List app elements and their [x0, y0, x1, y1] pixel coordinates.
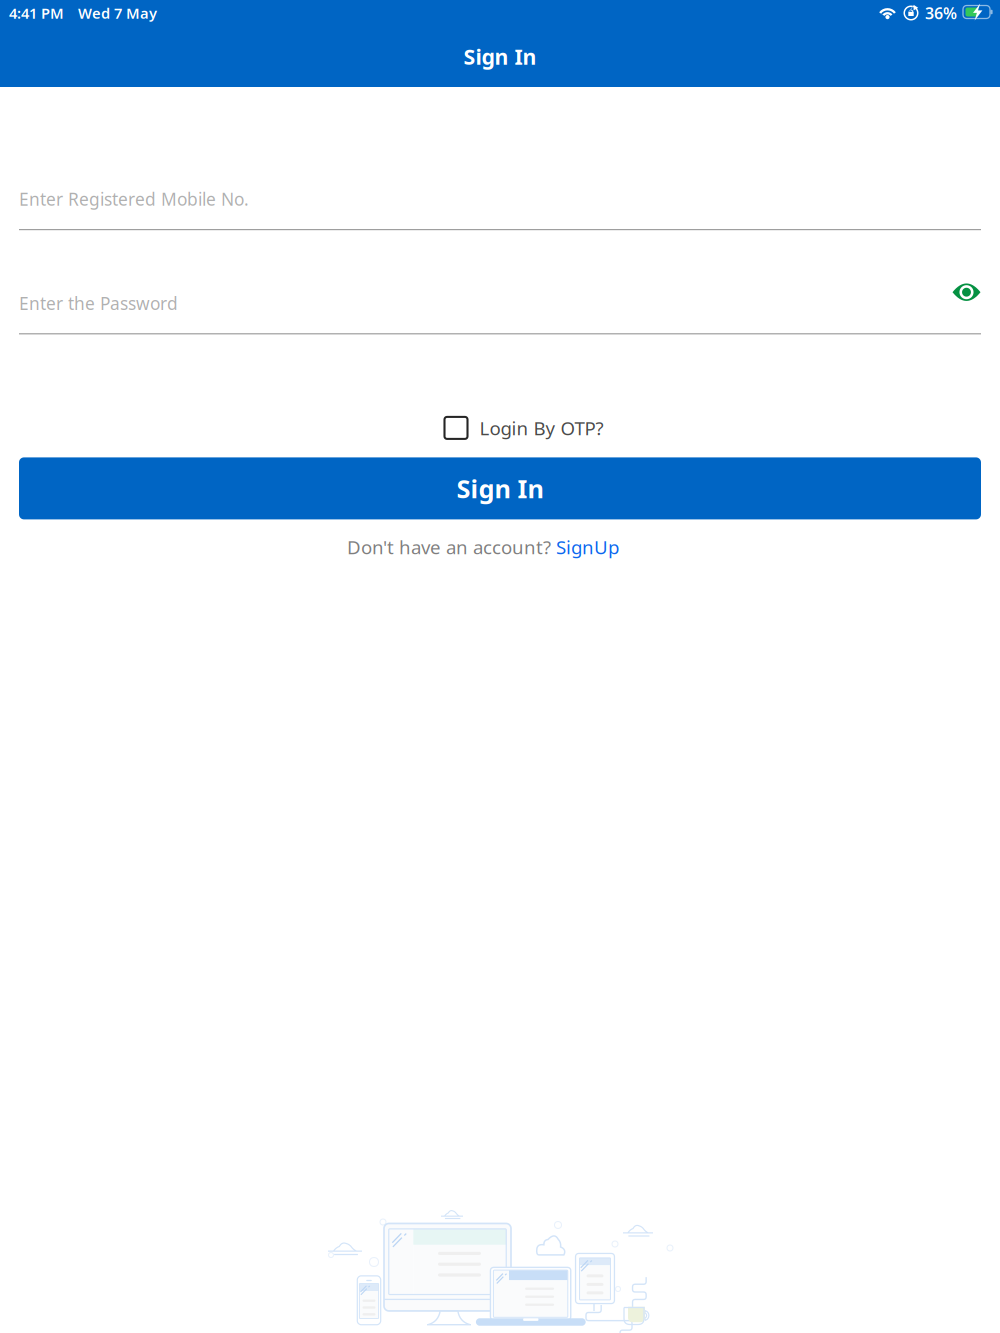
staticText: Don't have an account?: [347, 534, 556, 559]
button[interactable]: SignUp: [556, 534, 619, 559]
button[interactable]: Enter Registered Mobile No.: [19, 189, 981, 230]
button[interactable]: Login By OTP?: [444, 416, 603, 439]
staticText: 4:41 PM: [9, 3, 64, 23]
button[interactable]: Sign In: [19, 457, 981, 519]
staticText: SignUp: [556, 534, 619, 559]
staticText: Login By OTP?: [479, 415, 603, 440]
staticText: 36%: [925, 2, 957, 24]
staticText: Wed 7 May: [78, 3, 157, 23]
staticText: Enter Registered Mobile No.: [19, 187, 249, 210]
button[interactable]: Enter the Password: [19, 293, 952, 313]
staticText: Enter the Password: [19, 292, 178, 315]
staticText: Sign In: [463, 42, 536, 71]
button[interactable]: Show password: [952, 282, 981, 302]
staticText: Sign In: [456, 472, 543, 505]
